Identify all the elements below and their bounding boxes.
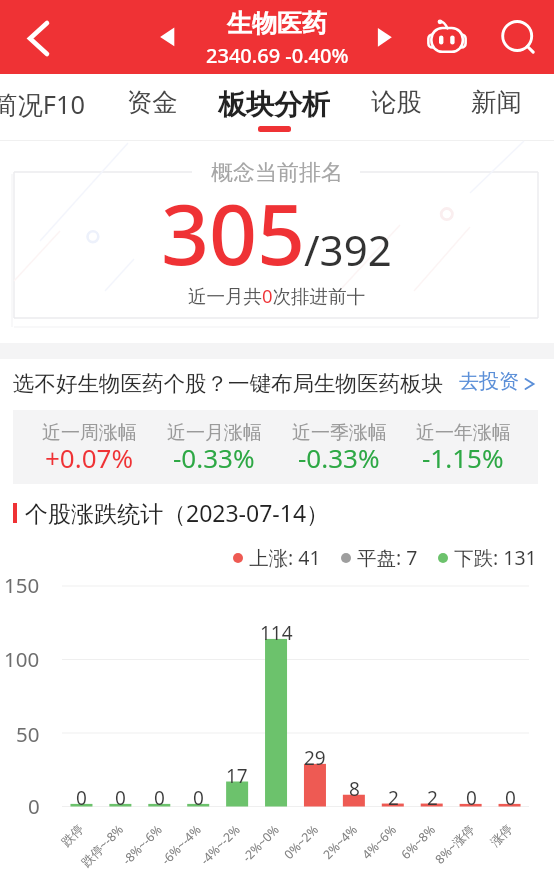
staticText: 简况F10 <box>0 87 86 122</box>
staticText: 0 <box>193 785 204 811</box>
button[interactable]: Next sector <box>368 18 404 54</box>
staticText: 近一年涨幅 <box>416 421 511 445</box>
staticText: 涨停 <box>487 821 516 849</box>
staticText: 17 <box>226 763 248 789</box>
staticText: 150 <box>4 571 40 599</box>
staticText: 6%~8% <box>397 821 439 863</box>
staticText: 论股 <box>371 87 422 119</box>
staticText: 去投资 <box>459 369 519 394</box>
staticText: 跌停 <box>58 821 87 849</box>
staticText: 0 <box>154 785 165 811</box>
staticText: 平盘: 7 <box>357 544 418 571</box>
button[interactable]: Search <box>490 10 542 62</box>
staticText: 8 <box>349 776 360 802</box>
staticText: 资金 <box>127 87 178 119</box>
staticText: 近一周涨幅 <box>42 421 137 445</box>
staticText: 0 <box>115 785 126 811</box>
staticText: 100 <box>4 645 40 673</box>
staticText: 选不好生物医药个股？一键布局生物医药板块 <box>13 370 443 397</box>
staticText: -0.33% <box>173 440 255 475</box>
staticText: 上涨: 41 <box>249 544 321 571</box>
staticText: 生物医药 <box>227 8 327 39</box>
staticText: 29 <box>304 745 326 771</box>
staticText: 近一月共0次排进前十 <box>188 283 366 308</box>
button[interactable]: Back <box>8 11 60 63</box>
staticText: 8%~涨停 <box>431 821 478 868</box>
staticText: 2 <box>427 785 438 811</box>
button[interactable]: 资金 <box>92 74 212 141</box>
staticText: 0%~2% <box>280 821 322 863</box>
staticText: -1.15% <box>422 440 504 475</box>
staticText: 0 <box>76 785 87 811</box>
staticText: 个股涨跌统计（2023-07-14） <box>25 497 330 528</box>
staticText: -4%~-2% <box>197 821 244 868</box>
button[interactable]: 新闻 <box>436 74 554 141</box>
staticText: 0 <box>28 792 40 820</box>
staticText: -8%~-6% <box>119 821 166 868</box>
staticText: 2 <box>388 785 399 811</box>
staticText: 新闻 <box>471 87 522 119</box>
staticText: 2%~4% <box>319 821 361 863</box>
staticText: 近一季涨幅 <box>292 421 387 445</box>
staticText: 近一月涨幅 <box>167 421 262 445</box>
staticText: 4%~6% <box>358 821 400 863</box>
staticText: -2%~0% <box>238 821 283 865</box>
staticText: 114 <box>260 620 293 646</box>
staticText: 板块分析 <box>218 87 330 122</box>
staticText: 概念当前排名 <box>211 159 343 187</box>
button[interactable]: 论股 <box>336 74 456 141</box>
staticText: +0.07% <box>45 440 134 475</box>
staticText: 50 <box>16 720 40 748</box>
button[interactable]: 近一月涨幅 <box>152 410 276 484</box>
staticText: 0 <box>505 785 516 811</box>
staticText: 下跌: 131 <box>454 544 537 571</box>
button[interactable]: 选不好生物医药个股？一键布局生物医药板块 <box>0 359 554 402</box>
button[interactable]: 简况F10 <box>0 74 99 141</box>
button[interactable]: Previous sector <box>150 18 186 54</box>
button[interactable]: AI assistant <box>420 10 472 62</box>
staticText: 2340.69 -0.40% <box>206 42 349 69</box>
staticText: /392 <box>304 221 392 278</box>
staticText: -0.33% <box>298 440 380 475</box>
staticText: -6%~-4% <box>158 821 205 868</box>
staticText: 305 <box>161 175 306 289</box>
staticText: 跌停~-8% <box>77 821 127 870</box>
button[interactable]: 近一周涨幅 <box>27 410 151 484</box>
button[interactable]: 近一年涨幅 <box>401 410 525 484</box>
staticText: 0 <box>466 785 477 811</box>
button[interactable]: 板块分析 <box>214 74 334 141</box>
button[interactable]: 近一季涨幅 <box>277 410 401 484</box>
